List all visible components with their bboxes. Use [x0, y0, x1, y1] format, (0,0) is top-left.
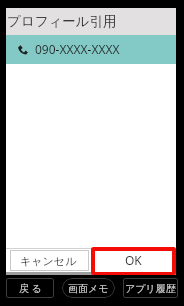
staticText: キャンセル — [20, 254, 77, 268]
staticText: プロフィール引用 — [7, 13, 117, 30]
button[interactable]: 画面メモ — [62, 278, 115, 298]
staticText: アプリ履歴 — [125, 282, 176, 295]
button[interactable]: アプリ履歴 — [123, 278, 178, 298]
staticText: OK — [125, 252, 142, 268]
button[interactable]: 戻 る — [6, 278, 54, 298]
other: Phone — [18, 45, 27, 54]
staticText: 戻 る — [19, 281, 42, 295]
staticText: 090-XXXX-XXXX — [35, 41, 120, 57]
staticText: 画面メモ — [68, 282, 109, 295]
button[interactable]: Phone — [6, 35, 176, 64]
button[interactable]: OK — [95, 251, 172, 272]
button[interactable]: キャンセル — [10, 250, 89, 271]
